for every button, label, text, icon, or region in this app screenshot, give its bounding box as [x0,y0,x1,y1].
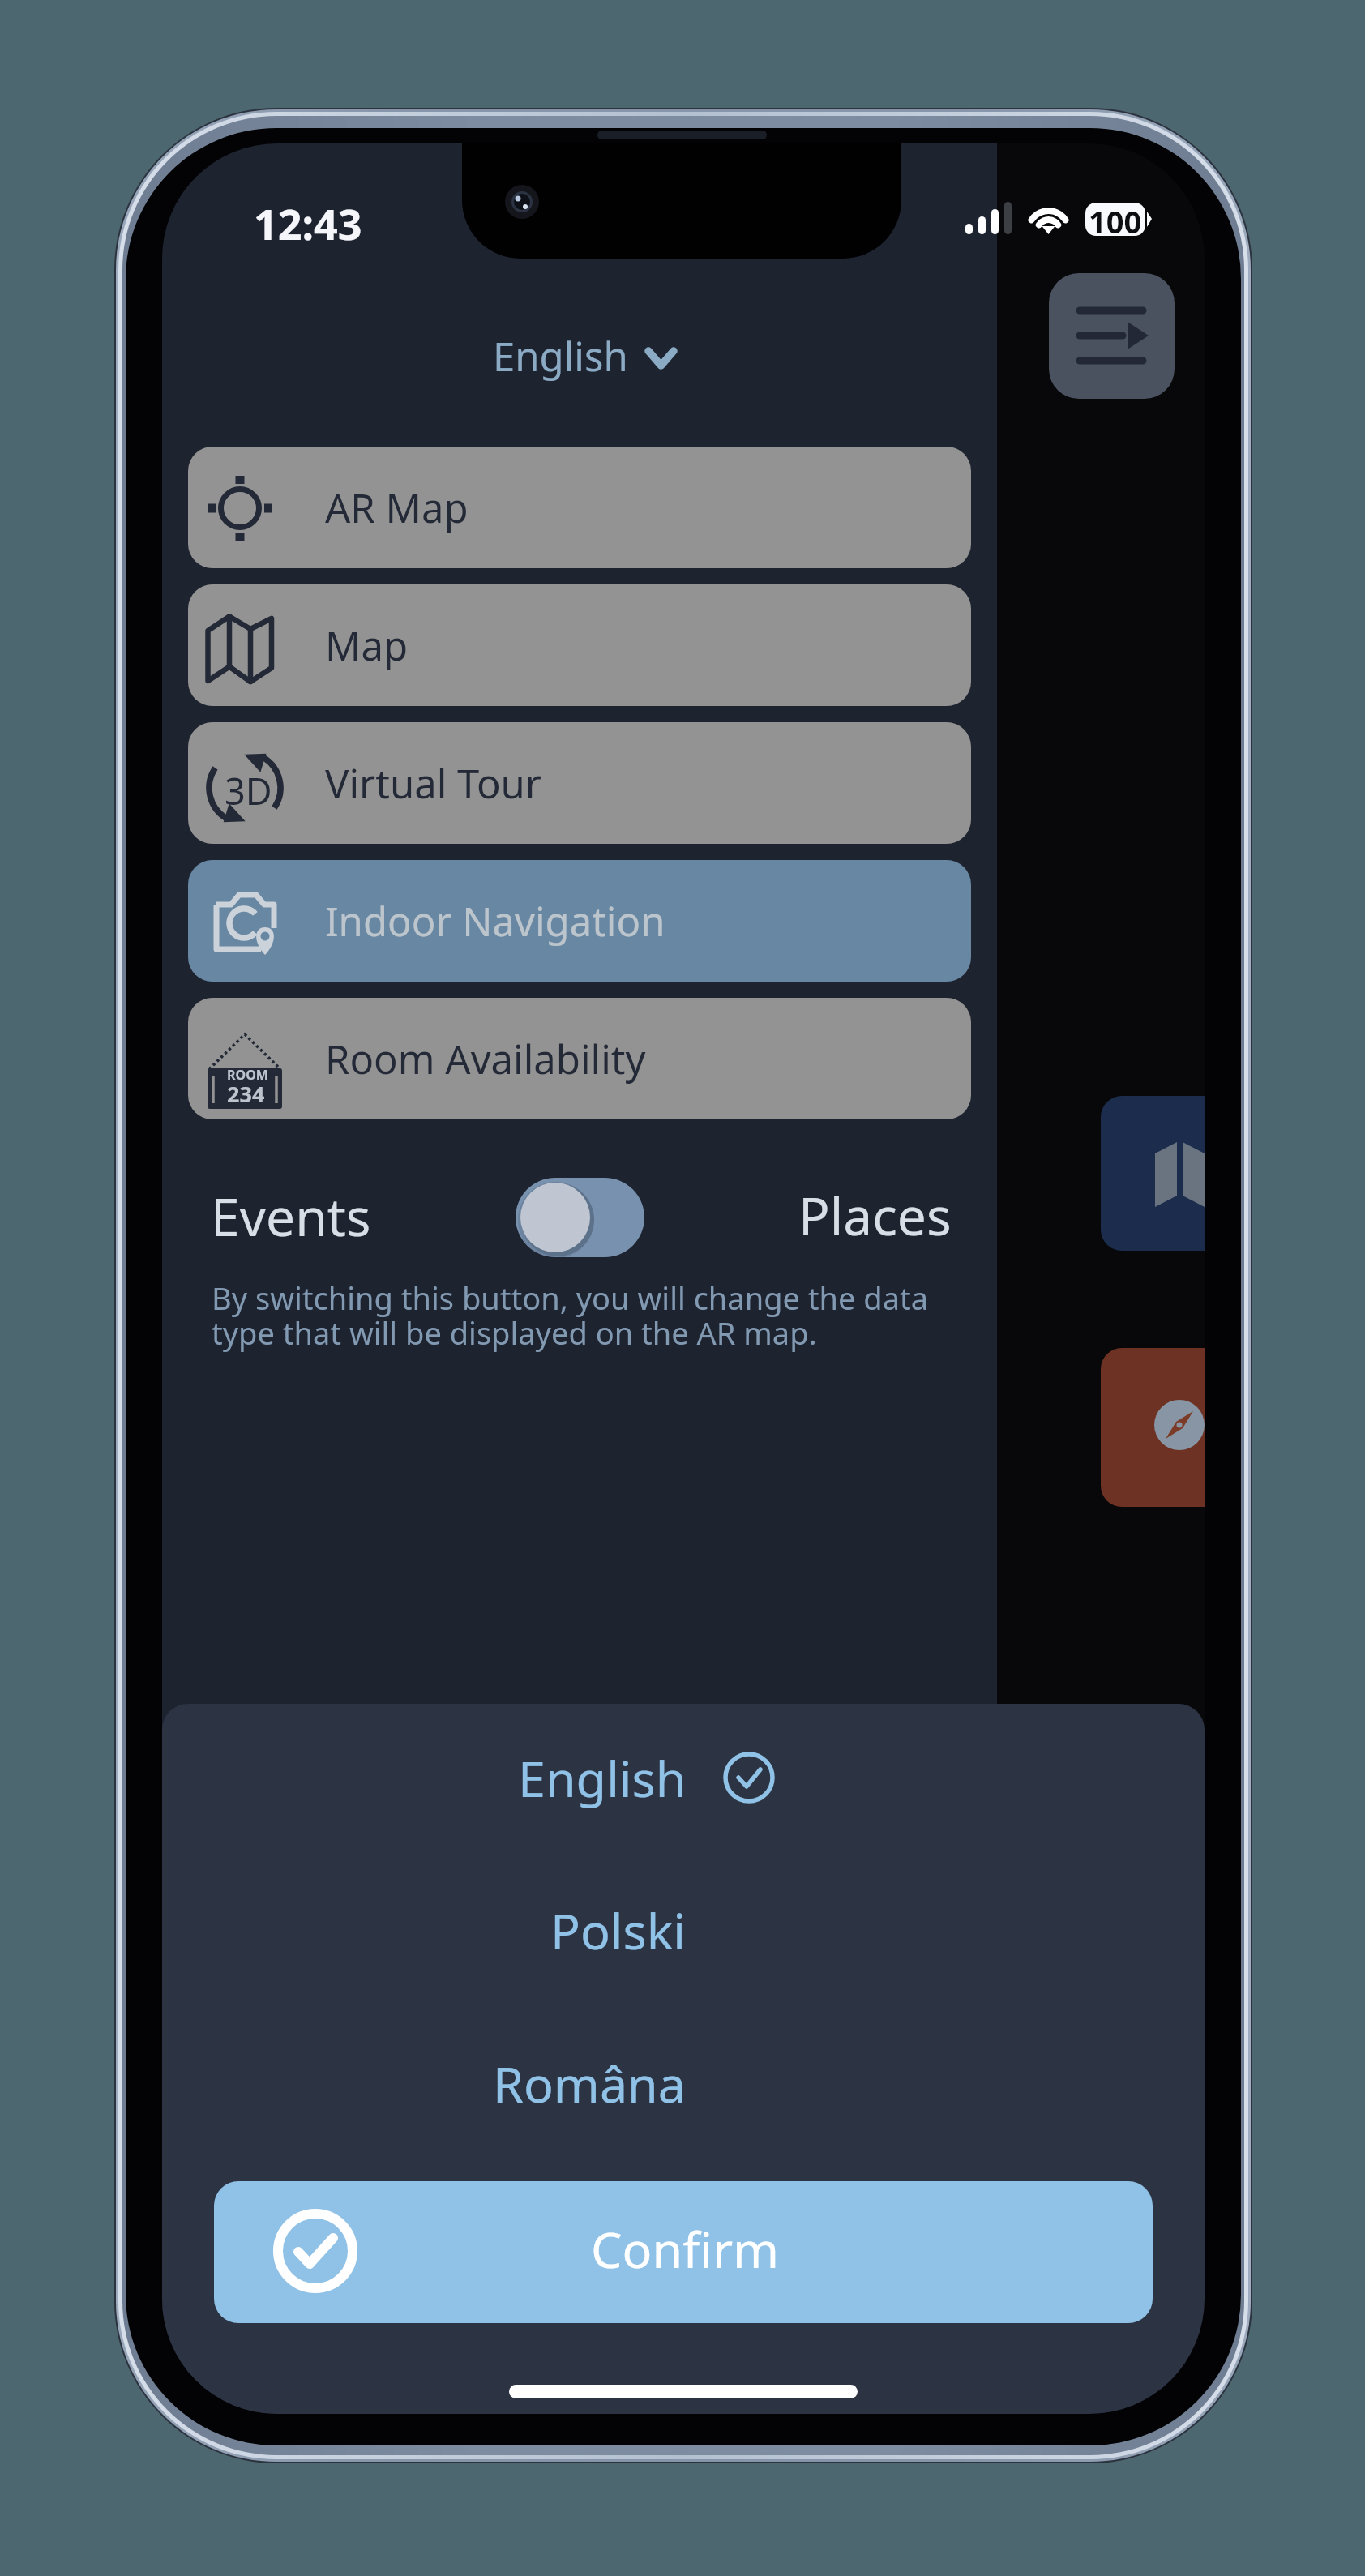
button[interactable]: Toggle data type [516,1178,644,1257]
staticText: 3D [225,766,272,815]
staticText: AR Map [325,481,469,535]
button[interactable]: Confirm [214,2181,1153,2323]
staticText: 234 [227,1079,265,1109]
staticText: English [493,329,628,383]
button[interactable]: 3D [188,722,971,844]
button[interactable]: Româna [162,2048,687,2118]
staticText: Virtual Tour [325,756,542,811]
staticText: Room Availability [325,1032,646,1086]
staticText: Confirm [591,2215,780,2283]
staticText: 100 [1089,200,1142,242]
staticText: Events [211,1181,371,1252]
staticText: Româna [493,2050,687,2117]
staticText: Map [325,618,409,673]
button[interactable]: English [162,1743,778,1812]
staticText: Places [798,1180,952,1251]
button[interactable]: ROOM [188,998,971,1119]
button[interactable]: Open menu [1049,273,1175,399]
button[interactable]: Polski [162,1895,687,1965]
staticText: Polski [550,1897,687,1964]
staticText: Indoor Navigation [325,894,665,948]
staticText: ROOM [227,1066,268,1084]
staticText: By switching this button, you will chang… [212,1277,1022,1354]
button[interactable]: AR Map [188,447,971,568]
staticText: English [518,1744,687,1812]
button[interactable]: Map [188,584,971,706]
button[interactable]: Indoor Navigation [188,860,971,982]
staticText: 12:43 [254,195,362,252]
button[interactable]: English [493,324,677,387]
